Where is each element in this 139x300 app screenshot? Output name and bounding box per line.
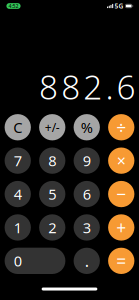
button[interactable]: 7: [5, 147, 31, 174]
staticText: 4: [14, 184, 22, 204]
staticText: 9: [83, 151, 91, 170]
staticText: 2: [48, 218, 56, 237]
button[interactable]: 0: [5, 248, 65, 274]
staticText: +/-: [45, 119, 60, 135]
staticText: 7: [14, 151, 22, 170]
button[interactable]: 8: [39, 147, 65, 174]
staticText: C: [13, 117, 22, 137]
staticText: 882.6: [39, 64, 135, 109]
staticText: 3: [83, 218, 91, 237]
button[interactable]: −: [108, 181, 134, 207]
staticText: 0: [14, 251, 22, 271]
staticText: 4:52: [8, 2, 18, 10]
button[interactable]: 2: [39, 214, 65, 241]
staticText: =: [116, 249, 126, 272]
staticText: ×: [117, 150, 126, 171]
button[interactable]: C: [5, 114, 31, 140]
button[interactable]: 6: [74, 181, 100, 207]
button[interactable]: 9: [74, 147, 100, 174]
staticText: .: [85, 250, 89, 271]
button[interactable]: %: [74, 114, 100, 140]
staticText: 8: [48, 151, 56, 170]
staticText: %: [81, 117, 93, 137]
button[interactable]: +/-: [39, 114, 65, 140]
staticText: +: [116, 216, 126, 239]
button[interactable]: 4: [5, 181, 31, 207]
staticText: 6: [83, 184, 91, 204]
button[interactable]: 3: [74, 214, 100, 241]
button[interactable]: =: [108, 248, 134, 274]
button[interactable]: +: [108, 214, 134, 241]
button[interactable]: ÷: [108, 114, 134, 140]
button[interactable]: ×: [108, 147, 134, 174]
button[interactable]: 5: [39, 181, 65, 207]
staticText: 5G: [115, 2, 124, 10]
staticText: −: [116, 182, 126, 205]
button[interactable]: 1: [5, 214, 31, 241]
staticText: ÷: [116, 116, 126, 139]
staticText: 1: [14, 218, 22, 237]
button[interactable]: .: [74, 248, 100, 274]
staticText: 5: [48, 184, 56, 204]
